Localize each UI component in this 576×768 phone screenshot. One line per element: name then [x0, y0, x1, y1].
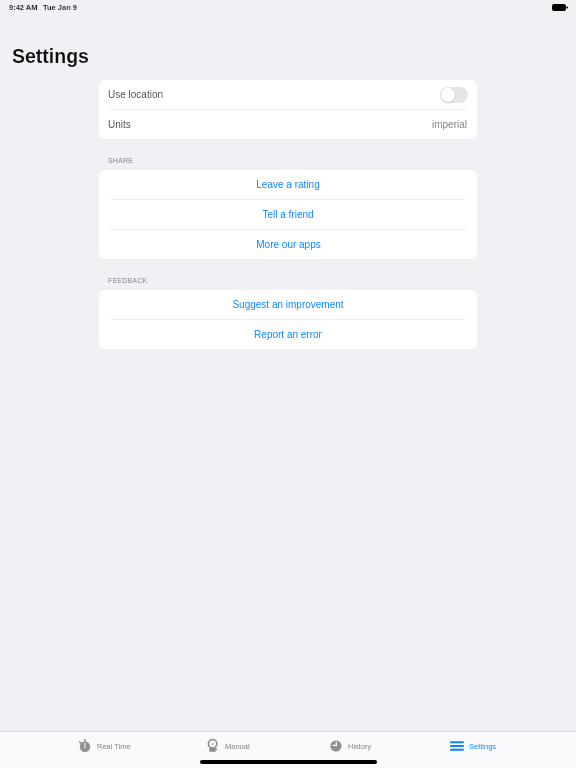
staticText: SHARE — [108, 157, 134, 165]
button[interactable]: Suggest an improvement — [99, 290, 477, 319]
staticText: Real Time — [97, 742, 131, 750]
button[interactable]: Use location toggle — [440, 87, 468, 103]
staticText: imperial — [432, 119, 468, 130]
button[interactable]: Leave a rating — [99, 170, 477, 199]
staticText: 9:42 AM — [9, 3, 38, 11]
button[interactable]: Real Time — [43, 732, 166, 768]
button[interactable]: Report an error — [99, 320, 477, 349]
button[interactable]: Tell a friend — [99, 200, 477, 229]
button[interactable]: More our apps — [99, 230, 477, 259]
staticText: Leave a rating — [256, 179, 320, 190]
button[interactable]: Units — [99, 110, 477, 139]
staticText: Settings — [12, 45, 89, 67]
staticText: Tell a friend — [262, 209, 314, 220]
button[interactable]: Settings — [412, 732, 535, 768]
button[interactable]: History — [289, 732, 412, 768]
staticText: Report an error — [254, 329, 322, 340]
staticText: More our apps — [256, 239, 321, 250]
staticText: History — [348, 742, 372, 750]
staticText: FEEDBACK — [108, 277, 148, 285]
other: Battery full — [552, 4, 568, 11]
staticText: Units — [108, 119, 131, 130]
button[interactable]: Use location — [99, 80, 477, 109]
staticText: Settings — [469, 742, 497, 750]
staticText: Suggest an improvement — [232, 299, 344, 310]
staticText: Tue Jan 9 — [43, 3, 78, 11]
button[interactable]: Manual — [166, 732, 289, 768]
staticText: Use location — [108, 89, 164, 100]
staticText: Manual — [225, 742, 250, 750]
